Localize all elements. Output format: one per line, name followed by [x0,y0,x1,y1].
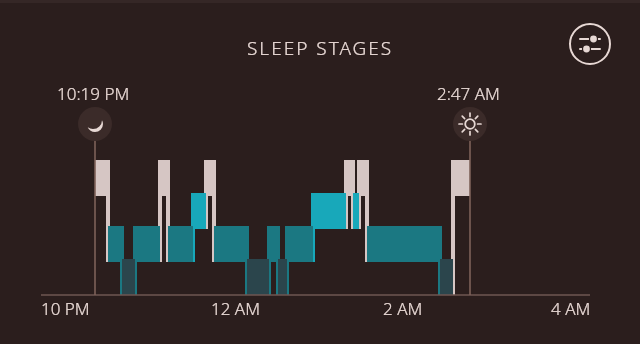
staticText: SLEEP STAGES [247,35,394,61]
staticText: 12 AM [211,297,260,320]
button[interactable]: Sleep settings [568,22,612,66]
staticText: 10:19 PM [57,82,130,105]
staticText: 2 AM [383,297,423,320]
staticText: 2:47 AM [437,82,500,105]
staticText: 4 AM [551,297,591,320]
staticText: 10 PM [41,297,90,320]
